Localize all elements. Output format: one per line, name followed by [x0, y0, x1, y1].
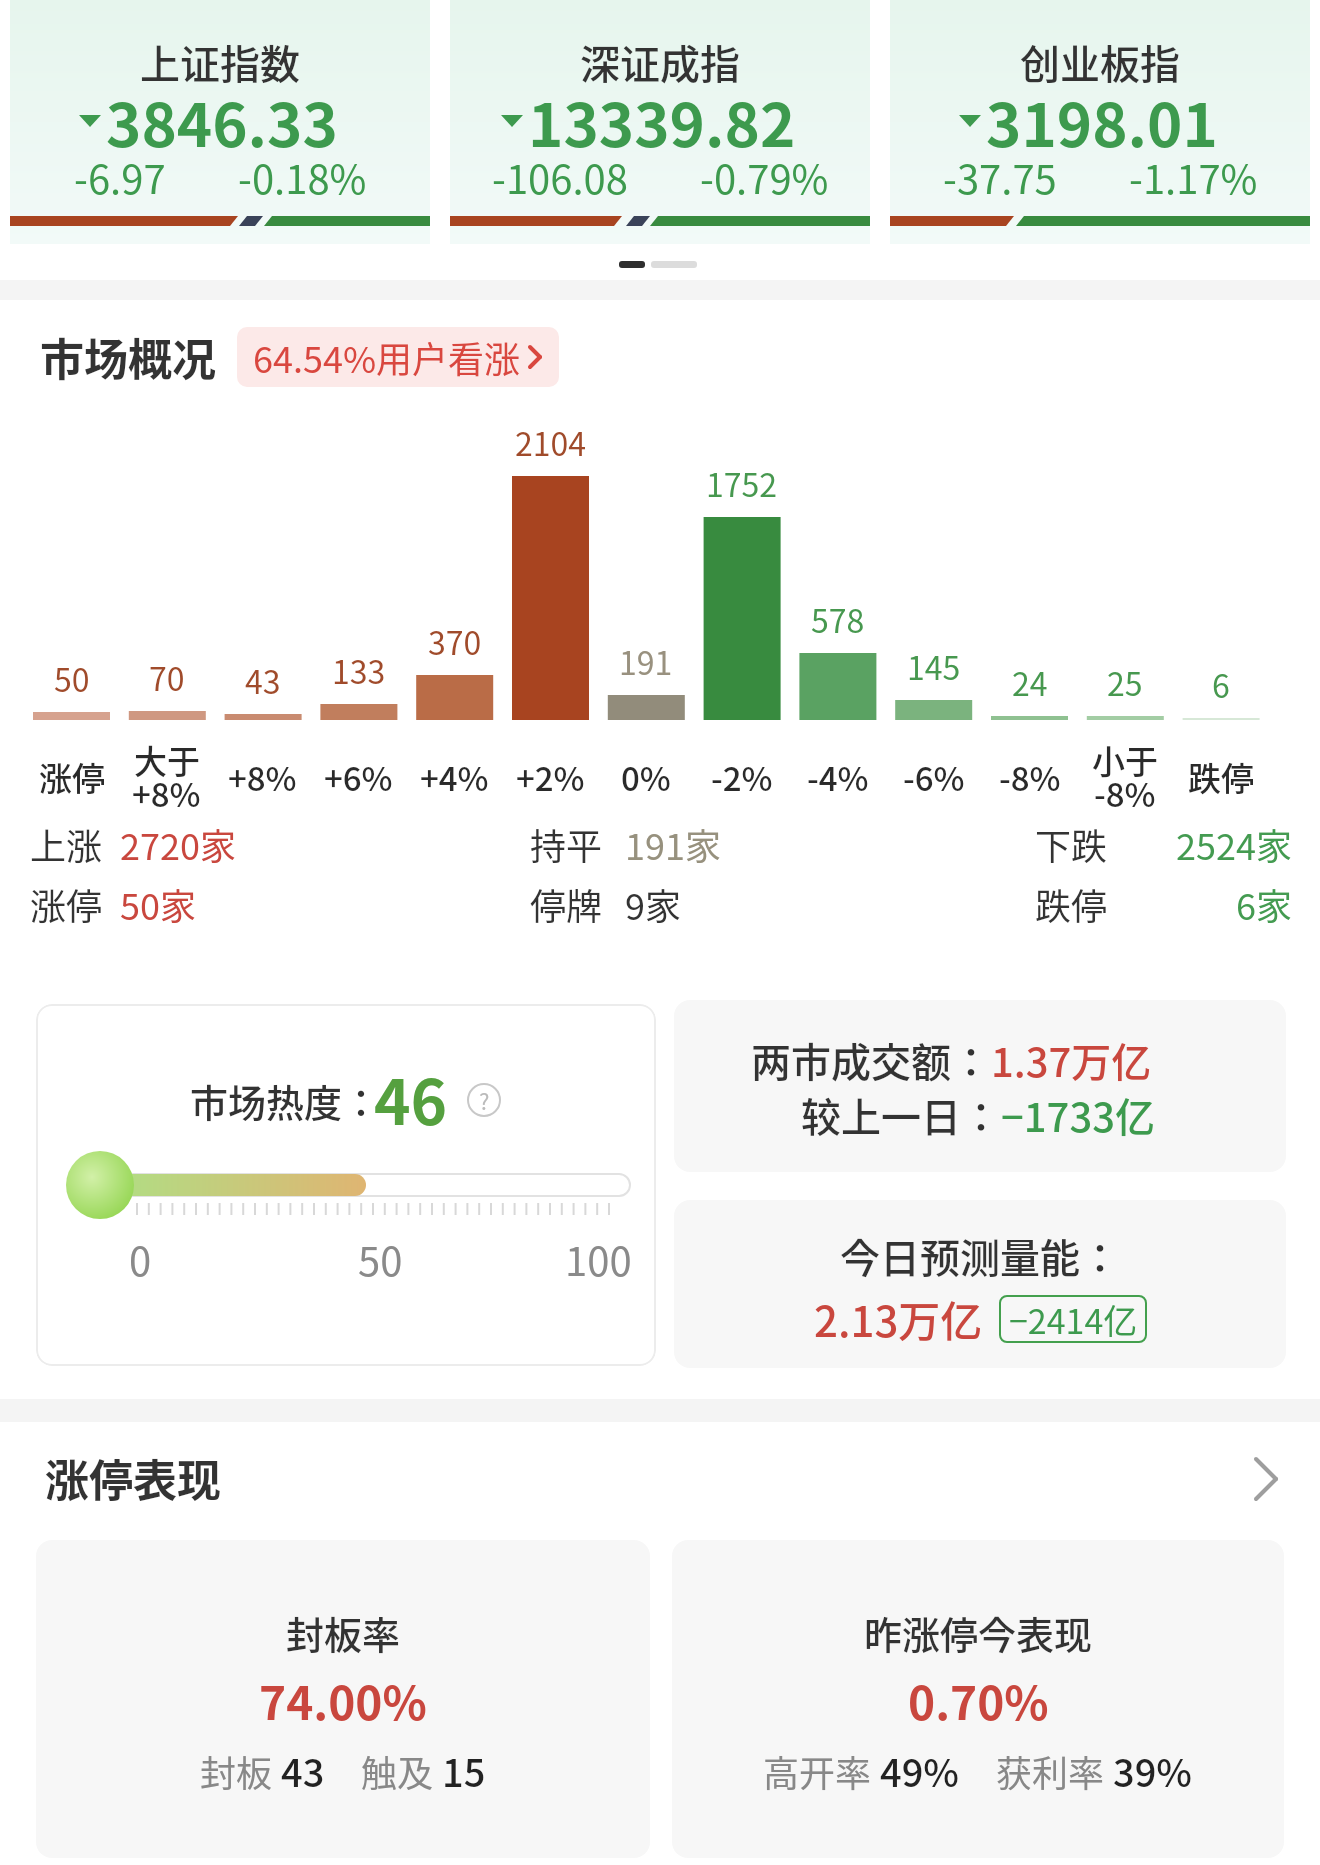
staticText: 43 — [281, 1743, 325, 1798]
staticText: 578 — [811, 596, 865, 642]
staticText: 25 — [1107, 659, 1143, 705]
staticText: 封板率 — [286, 1605, 401, 1660]
button[interactable] — [674, 1000, 1286, 1172]
staticText: 6家 — [1236, 878, 1292, 930]
staticText: 上证指数 — [140, 33, 300, 91]
staticText: 持平 — [530, 818, 603, 870]
staticText: 较上一日： — [801, 1086, 1001, 1144]
staticText: 2104 — [515, 419, 587, 465]
staticText: 昨涨停今表现 — [864, 1605, 1093, 1660]
staticText: 小于 — [1092, 736, 1158, 784]
staticText: +4% — [420, 753, 489, 801]
staticText: +8% — [228, 753, 297, 801]
staticText: -37.75 — [943, 148, 1057, 206]
staticText: 133 — [332, 647, 386, 693]
staticText: 50 — [358, 1230, 403, 1288]
button[interactable] — [36, 1540, 650, 1858]
staticText: +2% — [516, 753, 585, 801]
staticText: 获利率 — [996, 1745, 1113, 1797]
staticText: -1.17% — [1129, 148, 1258, 206]
staticText: +8% — [132, 769, 201, 817]
staticText: 下跌 — [1035, 818, 1108, 870]
button[interactable] — [0, 1440, 1320, 1520]
staticText: 39% — [1113, 1743, 1193, 1798]
staticText: 370 — [428, 618, 482, 664]
staticText: -8% — [999, 753, 1061, 801]
staticText: 跌停 — [1188, 753, 1254, 801]
staticText: 1752 — [706, 460, 778, 506]
staticText: -0.79% — [700, 148, 829, 206]
staticText: 191 — [619, 638, 673, 684]
staticText: 15 — [442, 1743, 486, 1798]
staticText: 46 — [374, 1053, 448, 1143]
staticText: -8% — [1094, 769, 1156, 817]
staticText: 1.37万亿 — [991, 1031, 1152, 1089]
staticText: 6 — [1212, 661, 1230, 707]
staticText: 市场概况 — [40, 325, 216, 389]
staticText: 3198.01 — [986, 77, 1218, 164]
staticText: 大于 — [134, 736, 200, 784]
button[interactable] — [890, 0, 1310, 244]
staticText: 49% — [880, 1743, 960, 1798]
staticText: 停牌 — [530, 878, 603, 930]
button[interactable] — [10, 0, 430, 244]
staticText: 创业板指 — [1020, 33, 1180, 91]
staticText: 市场热度： — [190, 1073, 381, 1128]
staticText: 高开率 — [763, 1745, 880, 1797]
staticText: 0 — [129, 1230, 152, 1288]
staticText: 深证成指 — [580, 33, 740, 91]
button[interactable] — [450, 0, 870, 244]
staticText: 涨停 — [30, 878, 103, 930]
staticText: 触及 — [361, 1745, 442, 1797]
staticText: 100 — [565, 1230, 632, 1288]
staticText: ? — [479, 1084, 490, 1116]
staticText: 43 — [245, 657, 281, 703]
staticText: −2414亿 — [1009, 1295, 1138, 1343]
staticText: +6% — [324, 753, 393, 801]
staticText: -6.97 — [74, 148, 166, 206]
staticText: −1733亿 — [1001, 1086, 1155, 1144]
staticText: -106.08 — [492, 148, 628, 206]
staticText: 2.13万亿 — [814, 1288, 983, 1349]
staticText: 3846.33 — [106, 77, 338, 164]
staticText: 涨停表现 — [45, 1446, 221, 1510]
staticText: 24 — [1012, 659, 1048, 705]
staticText: -4% — [807, 753, 869, 801]
staticText: 0.70% — [908, 1667, 1049, 1734]
staticText: 今日预测量能： — [840, 1227, 1120, 1285]
staticText: 191家 — [625, 818, 721, 870]
staticText: 封板 — [200, 1745, 281, 1797]
button[interactable] — [674, 1200, 1286, 1368]
staticText: 2720家 — [120, 818, 236, 870]
staticText: 50家 — [120, 878, 196, 930]
staticText: 145 — [907, 643, 961, 689]
staticText: 两市成交额： — [751, 1031, 991, 1089]
staticText: 9家 — [625, 878, 681, 930]
staticText: 2524家 — [1176, 818, 1292, 870]
staticText: -0.18% — [238, 148, 367, 206]
staticText: 74.00% — [259, 1667, 427, 1734]
staticText: 跌停 — [1035, 878, 1108, 930]
staticText: 64.54%用户看涨 — [253, 331, 521, 383]
staticText: 0% — [621, 753, 671, 801]
staticText: -6% — [903, 753, 965, 801]
staticText: 13339.82 — [528, 77, 796, 164]
staticText: 涨停 — [39, 753, 105, 801]
button[interactable] — [36, 1004, 656, 1366]
staticText: 50 — [54, 655, 90, 701]
staticText: 70 — [149, 654, 185, 700]
button[interactable] — [672, 1540, 1284, 1858]
staticText: -2% — [711, 753, 773, 801]
button[interactable]: 64.54%用户看涨 — [237, 327, 559, 387]
staticText: 上涨 — [30, 818, 103, 870]
